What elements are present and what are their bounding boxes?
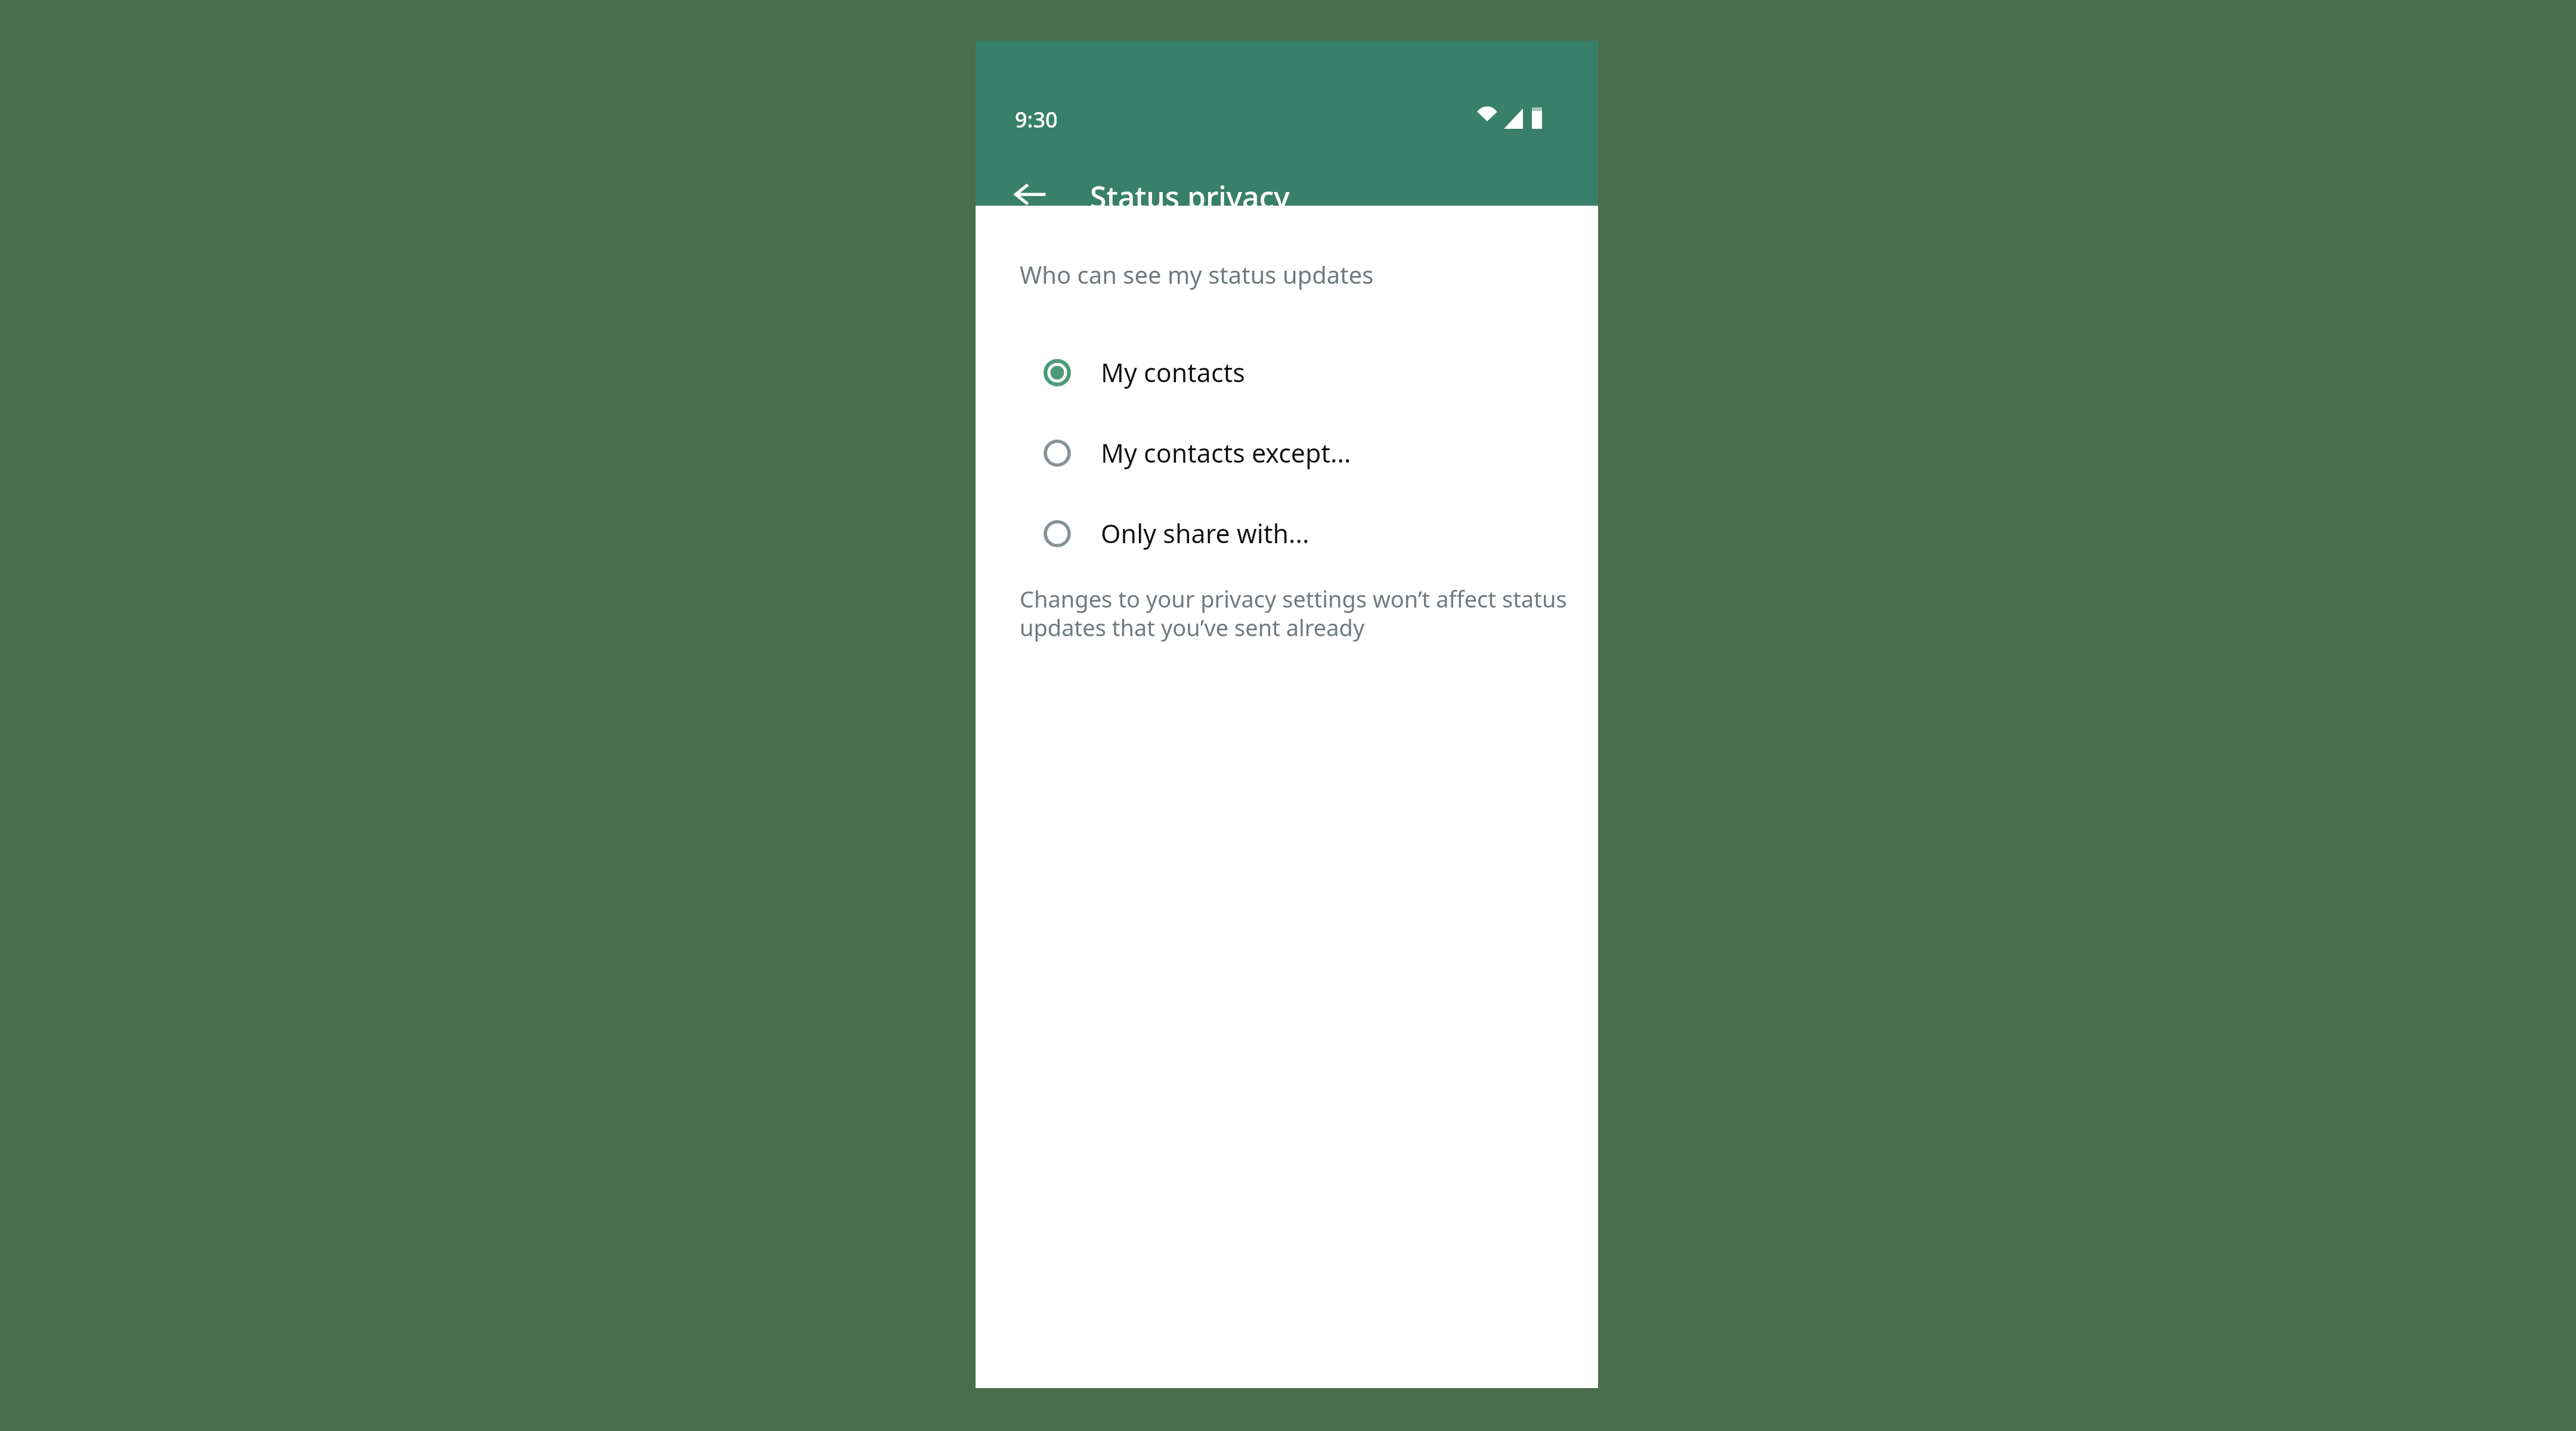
button[interactable]: My contacts (976, 332, 1598, 413)
button[interactable]: Back (1001, 165, 1060, 224)
staticText: Only share with... (1101, 516, 1309, 551)
staticText: My contacts except... (1101, 435, 1351, 470)
staticText: Status privacy (1090, 176, 1290, 217)
button[interactable]: My contacts except... (976, 413, 1598, 493)
staticText: Who can see my status updates (1020, 258, 1374, 290)
staticText: 9:30 (1015, 105, 1058, 134)
staticText: My contacts (1101, 355, 1245, 390)
button[interactable]: Only share with... (976, 493, 1598, 574)
staticText: Changes to your privacy settings won’t a… (1020, 583, 1567, 643)
